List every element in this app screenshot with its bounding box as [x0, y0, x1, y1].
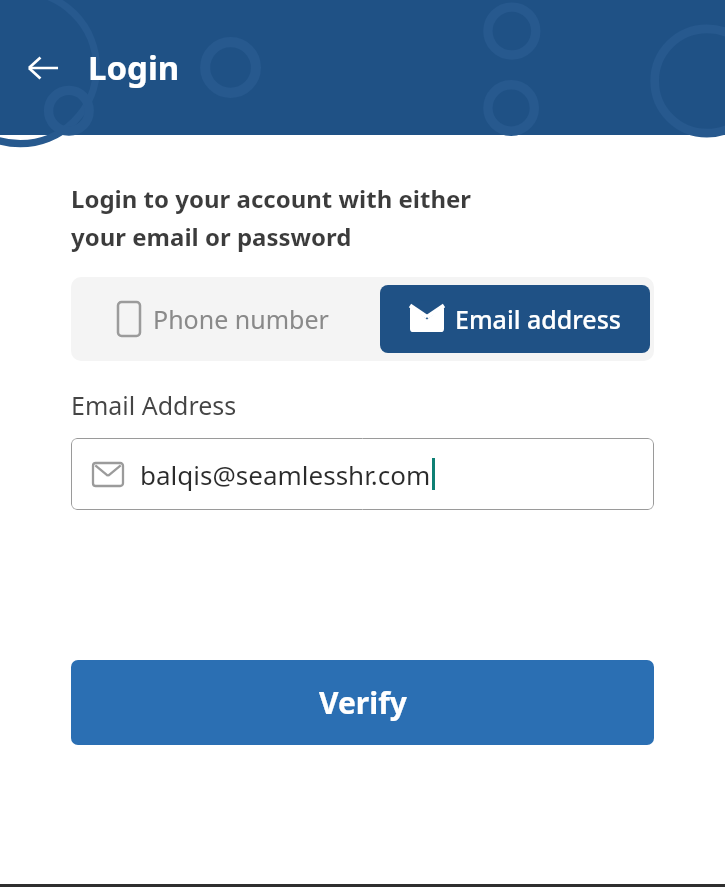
staticText: Verify	[319, 682, 407, 723]
button[interactable]: Back	[14, 39, 72, 97]
button[interactable]: Verify	[71, 660, 654, 745]
staticText: Login to your account with either	[71, 182, 472, 215]
button[interactable]: balqis@seamlesshr.com	[71, 438, 654, 510]
staticText: your email or password	[71, 220, 352, 253]
staticText: Email Address	[71, 388, 237, 422]
staticText: Phone number	[153, 302, 329, 336]
staticText: Email address	[455, 302, 621, 336]
button[interactable]: Phone number	[71, 277, 376, 361]
button[interactable]: Email address	[380, 285, 650, 353]
staticText: balqis@seamlesshr.com	[140, 457, 431, 492]
staticText: Login	[88, 45, 180, 90]
